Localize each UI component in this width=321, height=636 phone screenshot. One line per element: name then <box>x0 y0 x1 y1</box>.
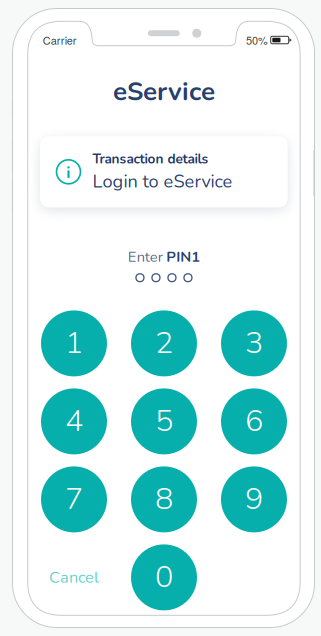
staticText: 50% <box>246 32 268 48</box>
staticText: 3 <box>245 322 263 364</box>
button[interactable]: 5 <box>131 388 197 454</box>
button[interactable]: 0 <box>131 544 197 610</box>
staticText: 0 <box>155 556 173 598</box>
staticText: 7 <box>65 478 83 520</box>
staticText: Cancel <box>49 566 99 589</box>
staticText: 8 <box>155 478 173 520</box>
staticText: Enter <box>128 247 163 267</box>
button[interactable]: 4 <box>41 388 107 454</box>
button[interactable]: 1 <box>41 310 107 376</box>
button[interactable]: 3 <box>221 310 287 376</box>
staticText: 2 <box>155 322 173 364</box>
staticText: Transaction details <box>92 150 208 168</box>
staticText: 5 <box>155 400 173 442</box>
button[interactable]: 2 <box>131 310 197 376</box>
button[interactable]: 9 <box>221 466 287 532</box>
staticText: eService <box>113 74 215 109</box>
staticText: 6 <box>245 400 263 442</box>
button[interactable]: Cancel <box>41 544 107 610</box>
staticText: 9 <box>245 478 263 520</box>
staticText: PIN1 <box>166 247 200 267</box>
button[interactable]: 6 <box>221 388 287 454</box>
staticText: 4 <box>65 400 83 442</box>
staticText: 1 <box>65 322 83 364</box>
staticText: Login to eService <box>92 169 232 194</box>
button[interactable]: 7 <box>41 466 107 532</box>
button[interactable]: 8 <box>131 466 197 532</box>
staticText: Carrier <box>43 32 77 48</box>
